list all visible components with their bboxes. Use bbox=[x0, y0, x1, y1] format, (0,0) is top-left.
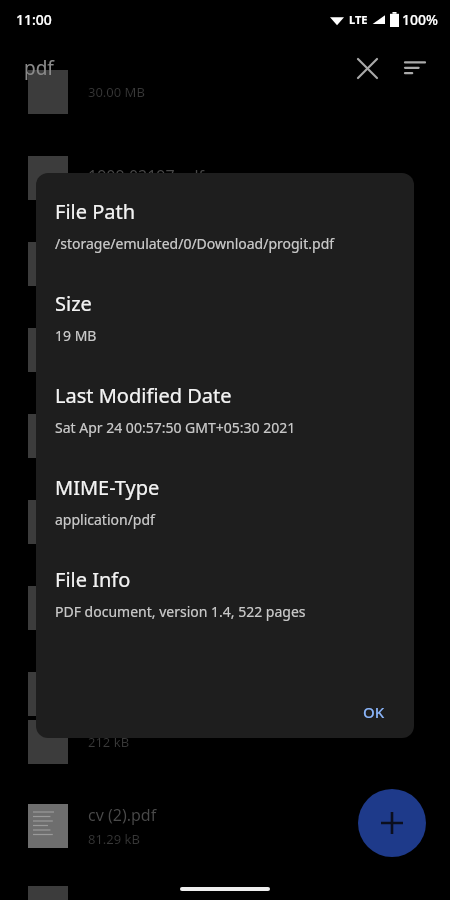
staticText: application/pdf bbox=[55, 510, 155, 529]
button[interactable]: Sort bbox=[394, 47, 436, 89]
button[interactable] bbox=[0, 492, 450, 552]
staticText: cv (2).pdf bbox=[88, 804, 157, 826]
staticText: Sat Apr 24 00:57:50 GMT+05:30 2021 bbox=[55, 418, 296, 437]
staticText: MIME-Type bbox=[55, 474, 160, 501]
button[interactable] bbox=[0, 406, 450, 466]
button[interactable]: OK bbox=[353, 696, 395, 728]
staticText: OK bbox=[363, 702, 385, 722]
button[interactable]: 30.00 MB bbox=[0, 62, 450, 122]
button[interactable]: pdf bbox=[24, 55, 54, 81]
staticText: /storage/emulated/0/Download/progit.pdf bbox=[55, 234, 335, 253]
staticText: PDF document, version 1.4, 522 pages bbox=[55, 602, 306, 621]
staticText: Size bbox=[55, 290, 92, 317]
staticText: LTE bbox=[349, 12, 368, 27]
staticText: 81.29 kB bbox=[88, 830, 141, 848]
staticText: 19 MB bbox=[55, 326, 97, 345]
staticText: 100% bbox=[402, 10, 438, 29]
button[interactable]: 212 kB bbox=[0, 712, 450, 772]
staticText: Last Modified Date bbox=[55, 382, 232, 409]
button[interactable] bbox=[0, 664, 450, 724]
button[interactable]: cv (2).pdf bbox=[0, 796, 450, 856]
staticText: File Path bbox=[55, 198, 136, 225]
staticText: File Info bbox=[55, 566, 131, 593]
button[interactable]: 1909.02197.pdf bbox=[0, 148, 450, 208]
button[interactable] bbox=[0, 320, 450, 380]
button[interactable]: Clear search bbox=[346, 47, 388, 89]
button[interactable] bbox=[0, 578, 450, 638]
staticText: pdf bbox=[24, 55, 54, 81]
button[interactable] bbox=[0, 234, 450, 294]
staticText: 212 kB bbox=[88, 733, 130, 751]
staticText: 30.00 MB bbox=[88, 83, 145, 101]
staticText: 1909.02197.pdf bbox=[88, 165, 205, 187]
button[interactable] bbox=[0, 878, 450, 900]
staticText: 11:00 bbox=[16, 10, 52, 29]
button[interactable]: Add bbox=[358, 789, 426, 857]
